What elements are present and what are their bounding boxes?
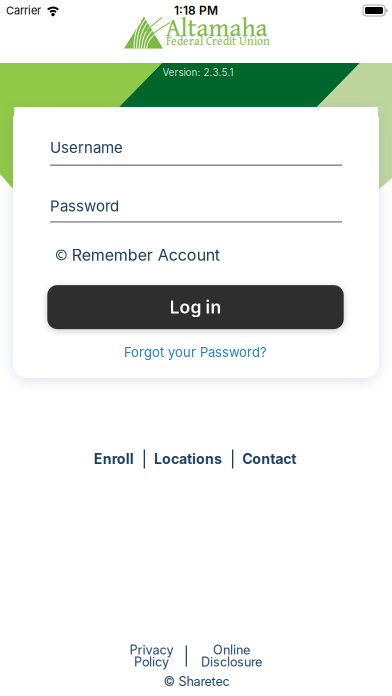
button[interactable]: © Sharetec xyxy=(163,674,229,689)
staticText: Forgot your Password? xyxy=(124,344,267,360)
staticText: Enroll xyxy=(94,450,134,467)
staticText: Username xyxy=(50,138,123,157)
button[interactable]: Online xyxy=(201,644,262,668)
staticText: Contact xyxy=(242,450,296,467)
button[interactable]: Contact xyxy=(242,450,296,467)
staticText: Federal Credit Union xyxy=(166,32,270,49)
button[interactable]: Privacy xyxy=(129,644,173,668)
staticText: Altamaha xyxy=(165,8,267,45)
staticText: Password xyxy=(50,197,119,215)
staticText: Carrier xyxy=(6,4,41,17)
button[interactable]: Locations xyxy=(154,450,222,467)
staticText: Policy xyxy=(134,654,169,669)
button[interactable]: Log in xyxy=(47,285,344,329)
staticText: Log in xyxy=(169,296,221,318)
staticText: Remember Account xyxy=(72,245,220,265)
staticText: Version: 2.3.5.1 xyxy=(162,67,233,78)
textField[interactable]: Password xyxy=(50,197,342,222)
staticText: Online xyxy=(213,642,250,657)
button[interactable]: Forgot your Password? xyxy=(47,344,344,360)
staticText: Privacy xyxy=(129,642,173,657)
staticText: Disclosure xyxy=(201,654,262,669)
staticText: © Sharetec xyxy=(163,674,229,689)
button[interactable]: Remember Account xyxy=(56,245,220,265)
staticText: Locations xyxy=(154,450,222,467)
button[interactable]: Enroll xyxy=(94,450,134,467)
staticText: 1:18 PM xyxy=(174,3,218,18)
textField[interactable]: Username xyxy=(50,138,342,166)
